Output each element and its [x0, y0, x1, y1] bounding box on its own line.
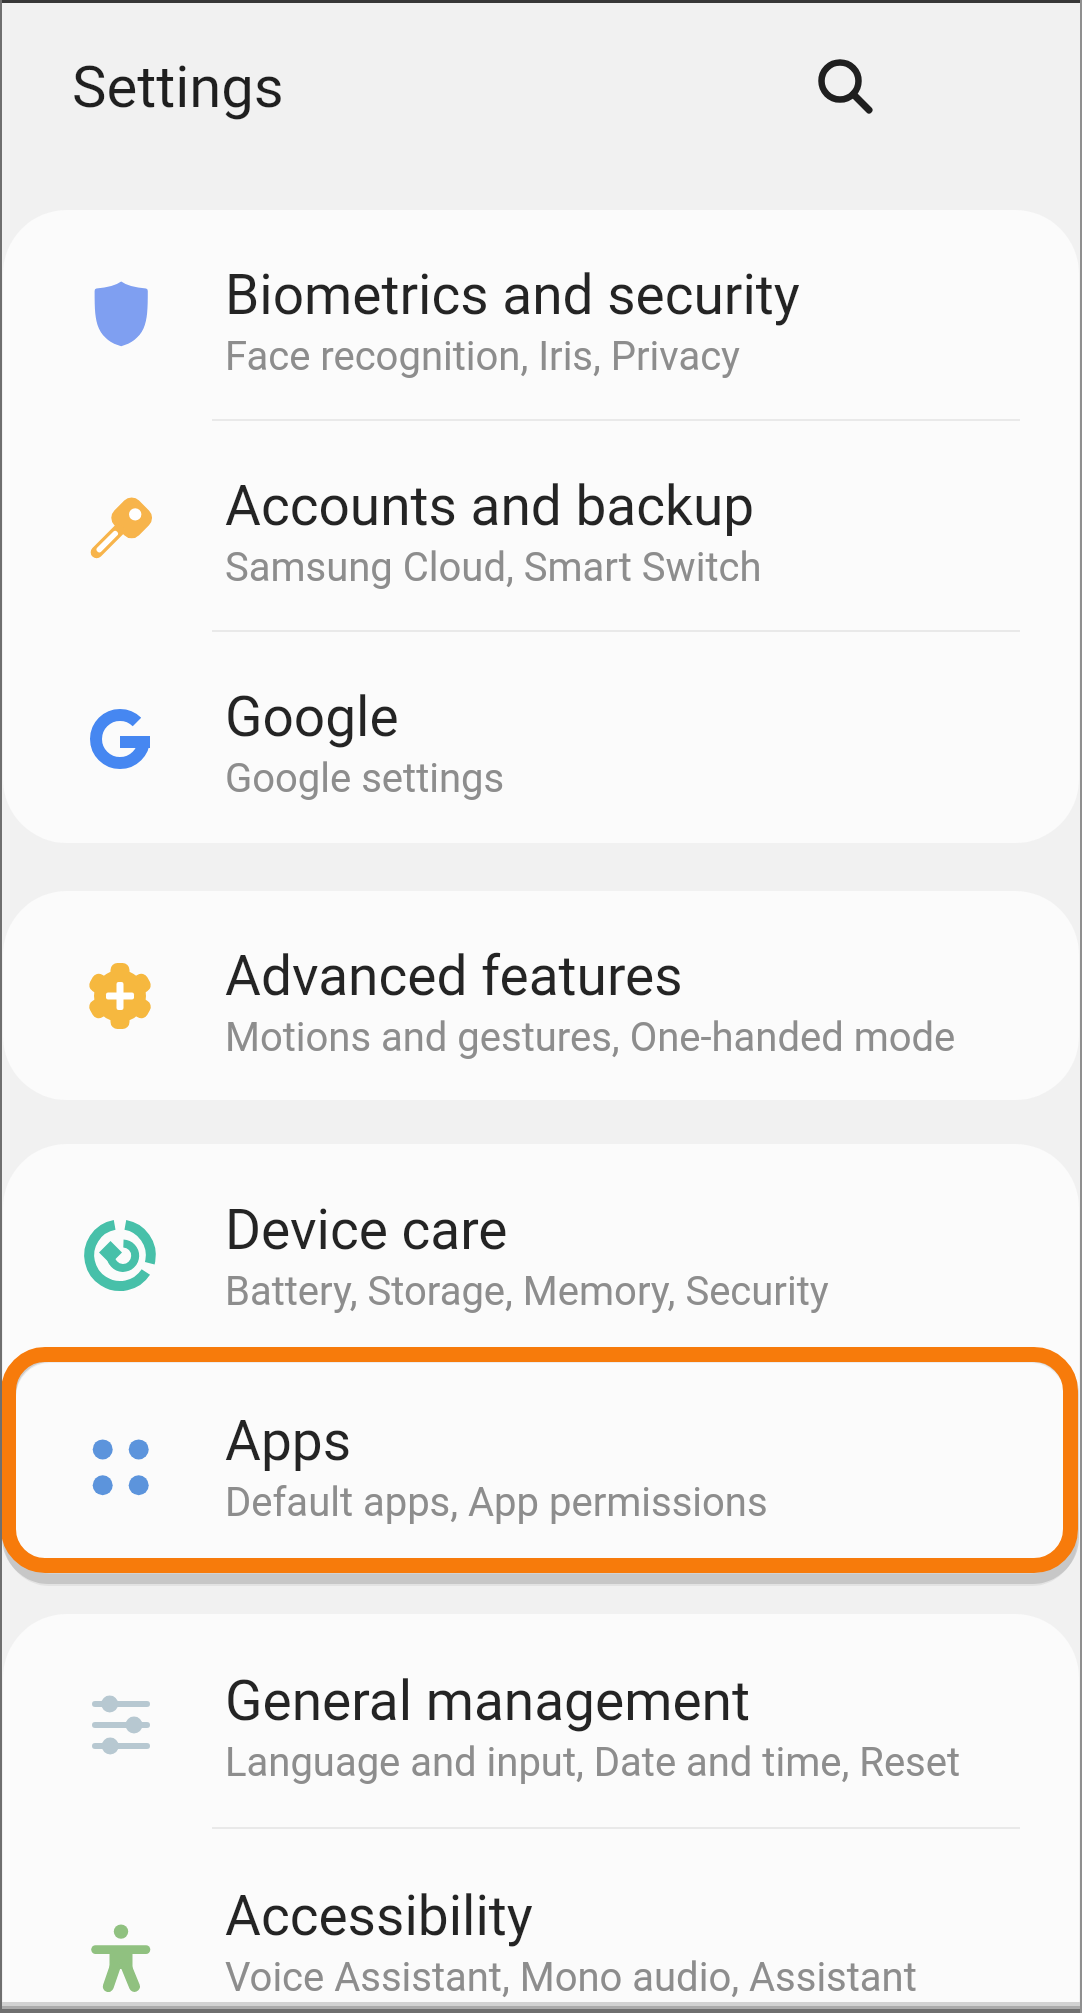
staticText: Samsung Cloud, Smart Switch — [225, 544, 762, 591]
staticText: Settings — [72, 53, 284, 121]
staticText: Language and input, Date and time, Reset — [225, 1739, 961, 1786]
button[interactable] — [800, 41, 880, 121]
button[interactable]: Accounts and backup — [3, 421, 1079, 630]
staticText: Motions and gestures, One-handed mode — [225, 1014, 956, 1061]
staticText: Biometrics and security — [225, 263, 800, 327]
button[interactable]: Google — [3, 632, 1079, 841]
button[interactable]: Advanced features — [3, 891, 1079, 1100]
staticText: Face recognition, Iris, Privacy — [225, 333, 741, 380]
button[interactable]: Biometrics and security — [3, 210, 1079, 419]
staticText: Accessibility — [225, 1884, 533, 1948]
staticText: Accounts and backup — [225, 474, 755, 538]
staticText: Device care — [225, 1198, 508, 1262]
staticText: Google — [225, 685, 399, 749]
staticText: Voice Assistant, Mono audio, Assistant — [225, 1954, 917, 2001]
staticText: Default apps, App permissions — [225, 1479, 768, 1526]
button[interactable]: General management — [3, 1614, 1079, 1827]
staticText: General management — [225, 1669, 750, 1733]
staticText: Google settings — [225, 755, 505, 802]
button[interactable]: Accessibility — [3, 1829, 1079, 2013]
staticText: Apps — [225, 1409, 352, 1473]
button[interactable]: Apps — [3, 1355, 1079, 1566]
button[interactable]: Device care — [3, 1144, 1079, 1355]
staticText: Advanced features — [225, 944, 683, 1008]
staticText: Battery, Storage, Memory, Security — [225, 1268, 829, 1315]
